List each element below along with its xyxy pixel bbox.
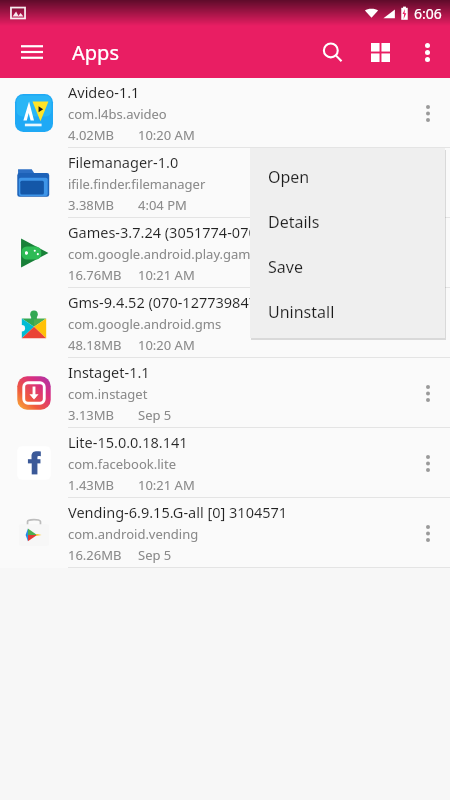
button[interactable]: Open <box>250 154 445 199</box>
staticText: 6:06 <box>414 4 442 23</box>
button[interactable]: More options <box>404 29 450 75</box>
staticText: 3.38MB <box>68 196 115 214</box>
staticText: Sep 5 <box>138 546 172 564</box>
staticText: com.google.android.play.gam <box>68 245 251 263</box>
button[interactable]: Save <box>250 244 445 289</box>
button[interactable]: Lite-15.0.0.18.141 <box>0 427 450 497</box>
staticText: com.android.vending <box>68 525 199 543</box>
staticText: 1.43MB <box>68 476 115 494</box>
staticText: Vending-6.9.15.G-all [0] 3104571 <box>68 502 288 522</box>
button[interactable]: Uninstall <box>250 289 445 334</box>
staticText: ifile.finder.filemanager <box>68 175 206 193</box>
staticText: 10:21 AM <box>138 476 195 494</box>
button[interactable]: Open navigation drawer <box>10 30 54 74</box>
button[interactable]: More options for Lite-15.0.0.18.141 <box>406 441 450 485</box>
button[interactable]: Vending-6.9.15.G-all [0] 3104571 <box>0 497 450 567</box>
staticText: Details <box>268 211 320 233</box>
staticText: Gms-9.4.52 (070-127739847) <box>68 292 262 312</box>
button[interactable]: More options for Vending-6.9.15.G-all [0… <box>406 511 450 555</box>
staticText: 3.13MB <box>68 406 115 424</box>
staticText: Sep 5 <box>138 406 172 424</box>
button[interactable]: More options for Filemanager-1.0 <box>406 161 450 205</box>
staticText: com.l4bs.avideo <box>68 105 167 123</box>
staticText: Games-3.7.24 (3051774-070) <box>68 222 262 242</box>
staticText: 4.02MB <box>68 126 115 144</box>
staticText: 10:20 AM <box>138 126 195 144</box>
staticText: 10:20 AM <box>138 336 195 354</box>
button[interactable]: Filemanager-1.0 <box>0 147 450 217</box>
staticText: Uninstall <box>268 301 335 323</box>
button[interactable]: Instaget-1.1 <box>0 357 450 427</box>
staticText: Avideo-1.1 <box>68 82 140 102</box>
staticText: 16.26MB <box>68 546 122 564</box>
staticText: 4:04 PM <box>138 196 187 214</box>
staticText: Instaget-1.1 <box>68 362 150 382</box>
button[interactable]: More options for Instaget-1.1 <box>406 371 450 415</box>
staticText: com.instaget <box>68 385 148 403</box>
button[interactable]: More options for Gms-9.4.52 (070-1277398… <box>406 301 450 345</box>
staticText: Lite-15.0.0.18.141 <box>68 432 188 452</box>
button[interactable]: Avideo-1.1 <box>0 78 450 147</box>
button[interactable]: Games-3.7.24 (3051774-070) <box>0 217 450 287</box>
staticText: Apps <box>72 39 119 66</box>
staticText: Save <box>268 256 303 278</box>
staticText: 16.76MB <box>68 266 122 284</box>
button[interactable]: More options for Avideo-1.1 <box>406 91 450 135</box>
button[interactable]: Details <box>250 199 445 244</box>
button[interactable]: Search <box>308 28 356 76</box>
button[interactable]: Gms-9.4.52 (070-127739847) <box>0 287 450 357</box>
staticText: Filemanager-1.0 <box>68 152 179 172</box>
button[interactable]: More options for Games-3.7.24 (3051774-0… <box>406 231 450 275</box>
button[interactable]: Grid view <box>356 28 404 76</box>
staticText: Open <box>268 166 310 188</box>
staticText: com.facebook.lite <box>68 455 176 473</box>
staticText: 10:21 AM <box>138 266 195 284</box>
staticText: 48.18MB <box>68 336 122 354</box>
staticText: com.google.android.gms <box>68 315 222 333</box>
